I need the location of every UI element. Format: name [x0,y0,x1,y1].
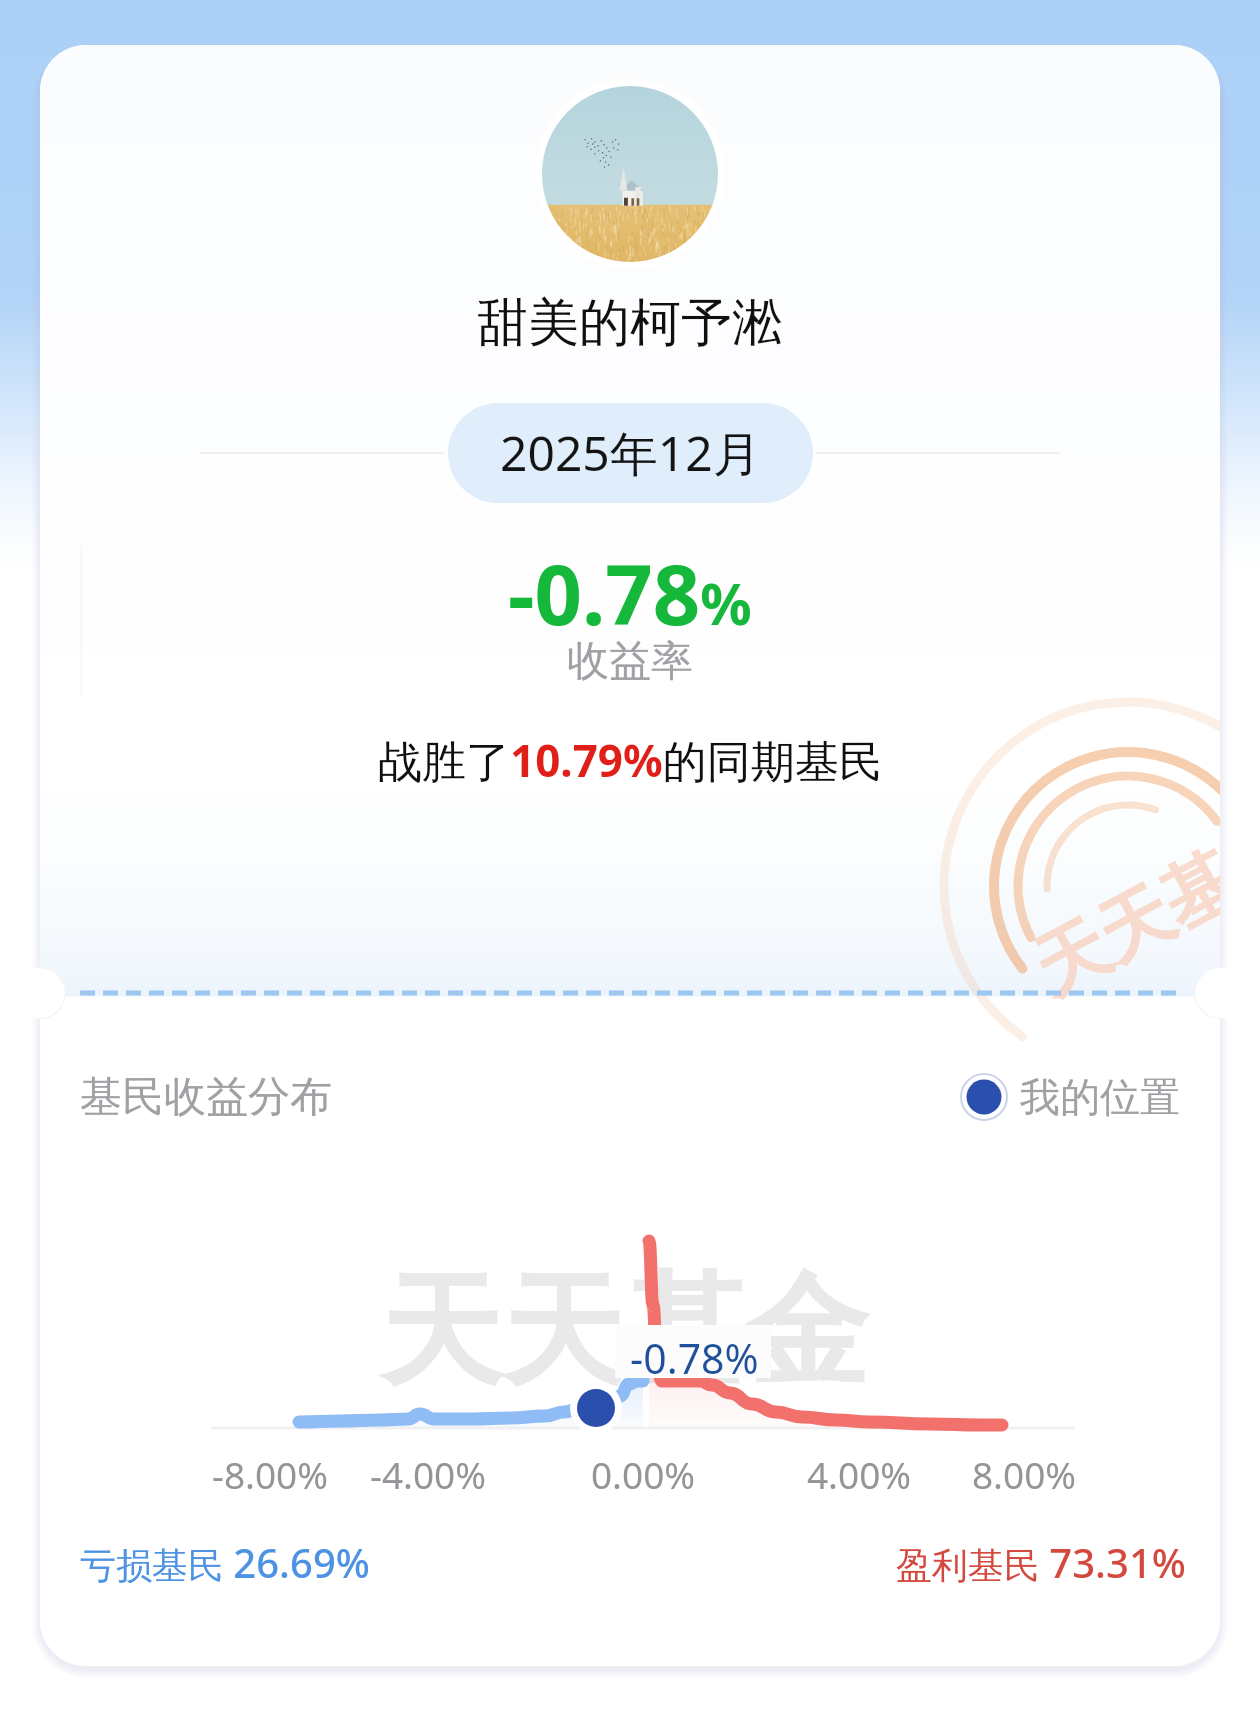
staticText: 4.00% [749,1449,969,1499]
staticText: 8.00% [914,1449,1134,1499]
staticText: 0.00% [533,1449,753,1499]
staticText: 亏损基民 26.69% [80,1535,370,1589]
button[interactable]: 用户头像 [535,79,725,269]
button[interactable]: 甜美的柯予淞 [477,291,783,355]
staticText: 基民收益分布 [80,1071,332,1124]
button[interactable]: 我的位置 [960,1072,1180,1122]
staticText: 我的位置 [1020,1072,1180,1122]
staticText: -0.78% [508,536,752,649]
staticText: 盈利基民 73.31% [896,1535,1186,1589]
staticText: 天天基金 [380,1256,868,1410]
button[interactable]: 盈利基民 73.31% [896,1535,1186,1589]
staticText: 天天基金 [1019,800,1220,1016]
staticText: 甜美的柯予淞 [477,291,783,355]
staticText: -8.00% [160,1449,380,1499]
staticText: -4.00% [318,1449,538,1499]
staticText: 2025年12月 [500,420,761,486]
button[interactable]: 2025年12月 [448,403,813,503]
staticText: 战胜了10.79%的同期基民 [378,730,883,790]
staticText: 收益率 [567,635,693,688]
staticText: -0.78% [630,1330,759,1386]
button[interactable]: 亏损基民 26.69% [80,1535,370,1589]
